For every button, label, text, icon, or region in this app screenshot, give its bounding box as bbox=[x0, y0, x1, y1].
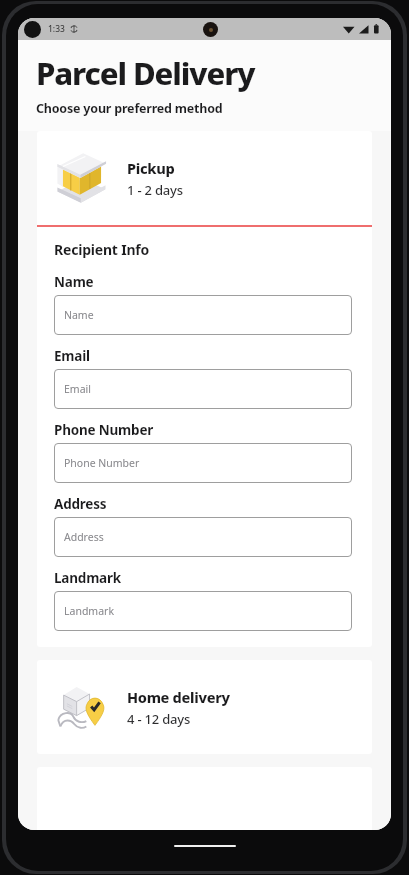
staticText: Pickup bbox=[127, 158, 175, 178]
other: Home delivery bbox=[55, 680, 109, 734]
button[interactable]: Landmark bbox=[54, 591, 352, 631]
staticText: Address bbox=[54, 495, 107, 513]
staticText: Email bbox=[64, 382, 91, 396]
button[interactable]: Phone Number bbox=[54, 443, 352, 483]
staticText: Email bbox=[54, 347, 90, 365]
button[interactable]: Address bbox=[54, 517, 352, 557]
staticText: Landmark bbox=[64, 604, 114, 618]
staticText: Choose your preferred method bbox=[36, 100, 223, 117]
staticText: Name bbox=[64, 308, 94, 322]
button[interactable]: Pickup counter bbox=[37, 131, 372, 225]
staticText: 4 - 12 days bbox=[127, 710, 191, 728]
staticText: 1:33 bbox=[48, 23, 65, 35]
button[interactable]: Email bbox=[54, 369, 352, 409]
staticText: Home delivery bbox=[127, 687, 230, 707]
staticText: Address bbox=[64, 530, 104, 544]
button[interactable]: Home delivery bbox=[37, 660, 372, 754]
button[interactable]: Name bbox=[54, 295, 352, 335]
staticText: Landmark bbox=[54, 569, 121, 587]
staticText: Phone Number bbox=[54, 421, 154, 439]
other: Pickup counter bbox=[54, 150, 110, 206]
staticText: Phone Number bbox=[64, 456, 140, 470]
staticText: Name bbox=[54, 273, 94, 291]
staticText: Parcel Delivery bbox=[36, 52, 255, 94]
staticText: Recipient Info bbox=[54, 240, 150, 259]
staticText: 1 - 2 days bbox=[127, 181, 183, 199]
